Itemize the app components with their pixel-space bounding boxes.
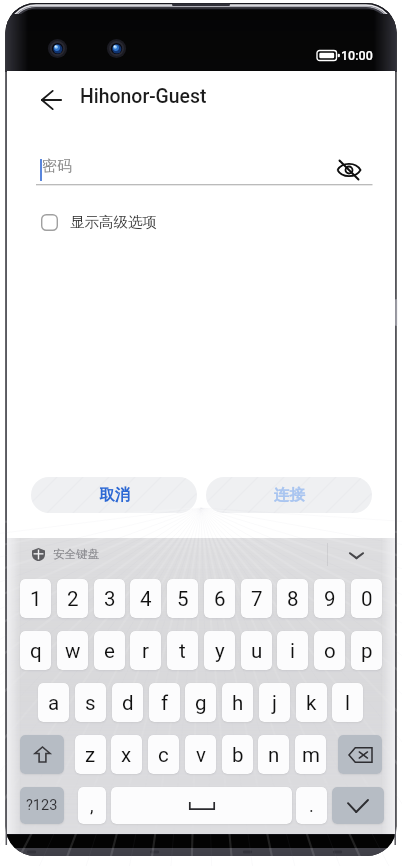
button[interactable]: g xyxy=(185,683,216,722)
staticText: . xyxy=(309,795,314,816)
staticText: , xyxy=(90,795,94,816)
staticText: s xyxy=(85,691,96,715)
button[interactable]: , xyxy=(78,787,106,824)
button[interactable]: Backspace xyxy=(338,735,382,774)
staticText: v xyxy=(196,743,206,767)
staticText: Hihonor-Guest xyxy=(80,85,207,108)
button[interactable]: ?123 xyxy=(20,787,64,824)
staticText: l xyxy=(345,691,350,715)
button[interactable]: u xyxy=(241,631,272,670)
button[interactable]: h xyxy=(222,683,253,722)
button[interactable]: e xyxy=(94,631,125,670)
staticText: 8 xyxy=(287,587,299,611)
staticText: c xyxy=(158,743,169,767)
staticText: 安全键盘 xyxy=(53,547,99,561)
button[interactable]: 3 xyxy=(94,579,125,618)
button[interactable]: 连接 xyxy=(206,477,372,513)
staticText: 7 xyxy=(251,587,263,611)
button[interactable]: m xyxy=(295,735,326,774)
staticText: a xyxy=(48,691,60,715)
staticText: m xyxy=(302,743,320,767)
staticText: i xyxy=(290,639,295,663)
staticText: 3 xyxy=(104,587,116,611)
button[interactable]: v xyxy=(185,735,216,774)
button[interactable]: . xyxy=(296,787,327,824)
staticText: 1 xyxy=(30,587,42,611)
button[interactable]: a xyxy=(38,683,69,722)
staticText: 10:00 xyxy=(341,48,373,63)
button[interactable]: 4 xyxy=(130,579,161,618)
staticText: u xyxy=(251,639,263,663)
button[interactable]: 6 xyxy=(204,579,235,618)
button[interactable]: 1 xyxy=(20,579,51,618)
button[interactable]: w xyxy=(57,631,88,670)
button[interactable]: l xyxy=(332,683,363,722)
staticText: 2 xyxy=(67,587,79,611)
button[interactable]: 5 xyxy=(167,579,198,618)
button[interactable]: z xyxy=(75,735,106,774)
button[interactable]: Show password xyxy=(331,152,367,188)
staticText: g xyxy=(195,691,207,715)
staticText: x xyxy=(121,743,132,767)
button[interactable]: d xyxy=(112,683,143,722)
button[interactable]: Space xyxy=(111,787,292,824)
staticText: r xyxy=(142,639,149,663)
button[interactable]: p xyxy=(351,631,382,670)
staticText: b xyxy=(232,743,244,767)
staticText: e xyxy=(104,639,115,663)
staticText: w xyxy=(65,639,81,663)
staticText: o xyxy=(324,639,336,663)
staticText: 6 xyxy=(214,587,226,611)
staticText: q xyxy=(30,639,42,663)
button[interactable]: n xyxy=(258,735,289,774)
button[interactable]: Hide keyboard xyxy=(340,539,372,571)
staticText: 4 xyxy=(140,587,152,611)
button[interactable]: f xyxy=(149,683,180,722)
button[interactable]: s xyxy=(75,683,106,722)
button[interactable]: k xyxy=(296,683,327,722)
button[interactable]: Shift xyxy=(20,735,64,774)
staticText: j xyxy=(272,691,277,715)
staticText: z xyxy=(85,743,96,767)
staticText: ?123 xyxy=(26,797,58,814)
staticText: 5 xyxy=(177,587,189,611)
button[interactable]: 0 xyxy=(351,579,382,618)
button[interactable]: 2 xyxy=(57,579,88,618)
staticText: y xyxy=(215,639,225,663)
button[interactable]: o xyxy=(314,631,345,670)
staticText: 显示高级选项 xyxy=(70,213,157,231)
staticText: p xyxy=(361,639,373,663)
staticText: 连接 xyxy=(274,485,305,505)
button[interactable]: Back xyxy=(31,80,71,120)
button[interactable]: 取消 xyxy=(31,477,197,513)
button[interactable]: c xyxy=(148,735,179,774)
button[interactable]: 7 xyxy=(241,579,272,618)
staticText: f xyxy=(161,691,169,715)
staticText: 9 xyxy=(324,587,336,611)
button[interactable]: b xyxy=(222,735,253,774)
staticText: k xyxy=(306,691,317,715)
button[interactable]: 显示高级选项 xyxy=(41,207,157,237)
button[interactable]: r xyxy=(130,631,161,670)
staticText: h xyxy=(232,691,244,715)
button[interactable]: i xyxy=(277,631,308,670)
staticText: t xyxy=(179,639,186,663)
staticText: 密码 xyxy=(42,157,72,176)
staticText: n xyxy=(268,743,280,767)
button[interactable]: y xyxy=(204,631,235,670)
staticText: d xyxy=(122,691,134,715)
button[interactable]: q xyxy=(20,631,51,670)
button[interactable]: 8 xyxy=(277,579,308,618)
button[interactable]: x xyxy=(111,735,142,774)
staticText: 取消 xyxy=(99,485,130,505)
staticText: 0 xyxy=(361,587,373,611)
button[interactable]: Enter xyxy=(332,787,384,824)
button[interactable]: t xyxy=(167,631,198,670)
button[interactable]: 9 xyxy=(314,579,345,618)
button[interactable]: j xyxy=(259,683,290,722)
